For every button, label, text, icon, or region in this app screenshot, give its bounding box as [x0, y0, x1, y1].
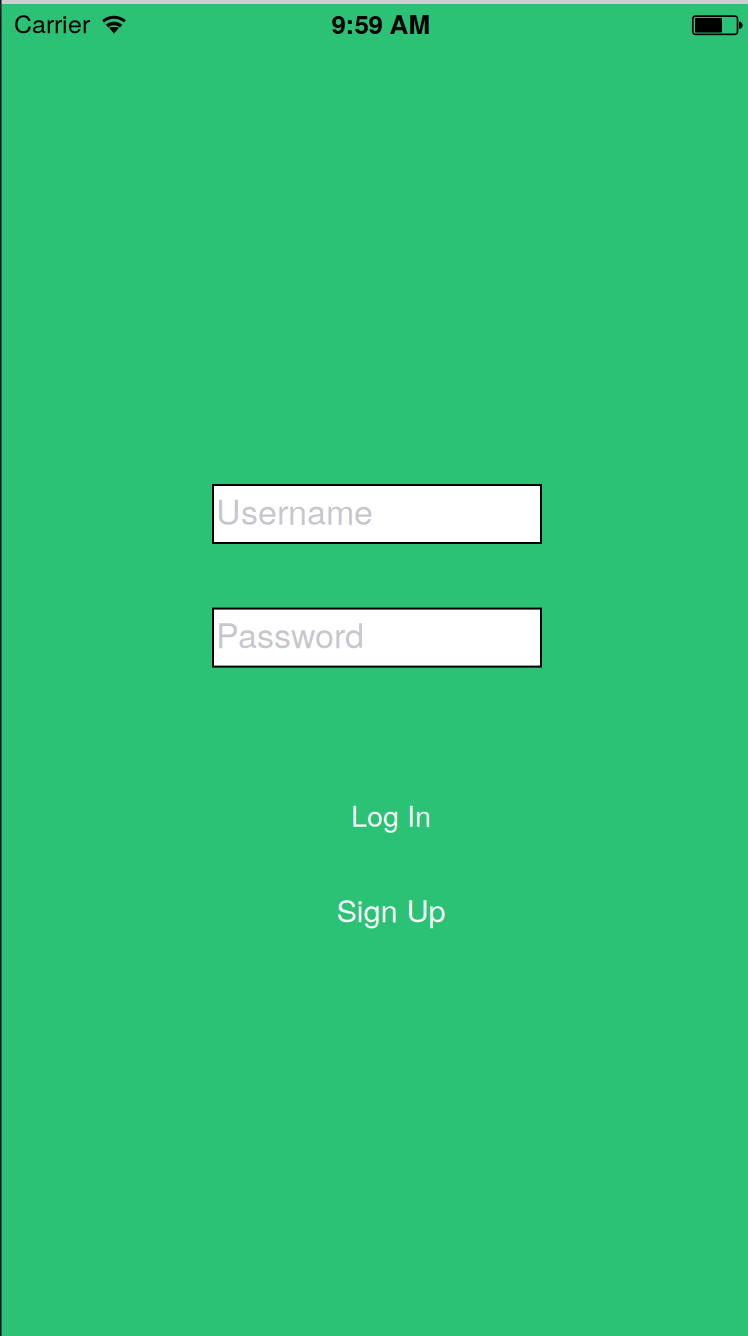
staticText: Password — [216, 609, 364, 658]
staticText: 9:59 AM — [331, 5, 430, 42]
staticText: Carrier — [14, 5, 90, 40]
button[interactable]: Sign Up — [306, 886, 476, 931]
staticText: Username — [216, 486, 373, 534]
staticText: Log In — [351, 794, 431, 835]
staticText: Sign Up — [336, 887, 445, 931]
button[interactable]: Username — [212, 484, 542, 544]
button[interactable]: Password — [212, 608, 542, 668]
button[interactable]: Log In — [306, 793, 476, 835]
